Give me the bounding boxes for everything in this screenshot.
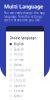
button[interactable]: Chinese [6, 78, 44, 83]
button[interactable]: German [6, 57, 44, 62]
staticText: Arabic [14, 94, 22, 98]
staticText: You can easily change the app language f… [4, 11, 45, 22]
button[interactable]: Portuguese [6, 67, 44, 73]
staticText: Italian [14, 63, 22, 67]
staticText: Spanish [14, 48, 24, 51]
staticText: German [14, 58, 24, 61]
staticText: Chinese [14, 79, 26, 82]
button[interactable]: Italian [6, 62, 44, 67]
staticText: Japanese [14, 84, 26, 87]
button[interactable]: Korean [6, 88, 44, 93]
staticText: Russian [14, 74, 24, 77]
button[interactable]: Japanese [6, 83, 44, 88]
staticText: Portuguese [14, 68, 31, 72]
button[interactable]: Spanish [6, 47, 44, 52]
button[interactable]: English [6, 41, 44, 47]
staticText: Korean [14, 89, 24, 93]
button[interactable]: Arabic [6, 93, 44, 99]
staticText: Multi Language [4, 3, 43, 10]
staticText: English [14, 42, 24, 46]
staticText: French [14, 53, 23, 56]
button[interactable]: French [6, 52, 44, 57]
button[interactable]: Russian [6, 73, 44, 78]
staticText: Choose Language [9, 36, 36, 40]
